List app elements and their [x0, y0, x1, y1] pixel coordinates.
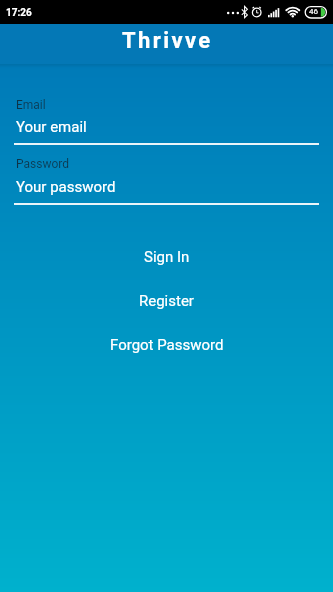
staticText: 17:26	[6, 7, 32, 19]
staticText: Email	[16, 98, 46, 112]
staticText: Register	[139, 292, 194, 310]
staticText: Sign In	[144, 248, 190, 266]
staticText: Your email	[16, 118, 87, 136]
button[interactable]: Forgot Password	[100, 328, 234, 362]
staticText: 46	[309, 7, 318, 16]
staticText: Your password	[16, 178, 116, 196]
staticText: Forgot Password	[110, 336, 224, 354]
staticText: Thrivve	[122, 28, 213, 54]
staticText: Password	[16, 157, 70, 171]
button[interactable]: Email	[14, 94, 319, 145]
button[interactable]: Sign In	[134, 240, 200, 274]
button[interactable]: Register	[129, 284, 204, 318]
button[interactable]: Password	[14, 154, 319, 205]
